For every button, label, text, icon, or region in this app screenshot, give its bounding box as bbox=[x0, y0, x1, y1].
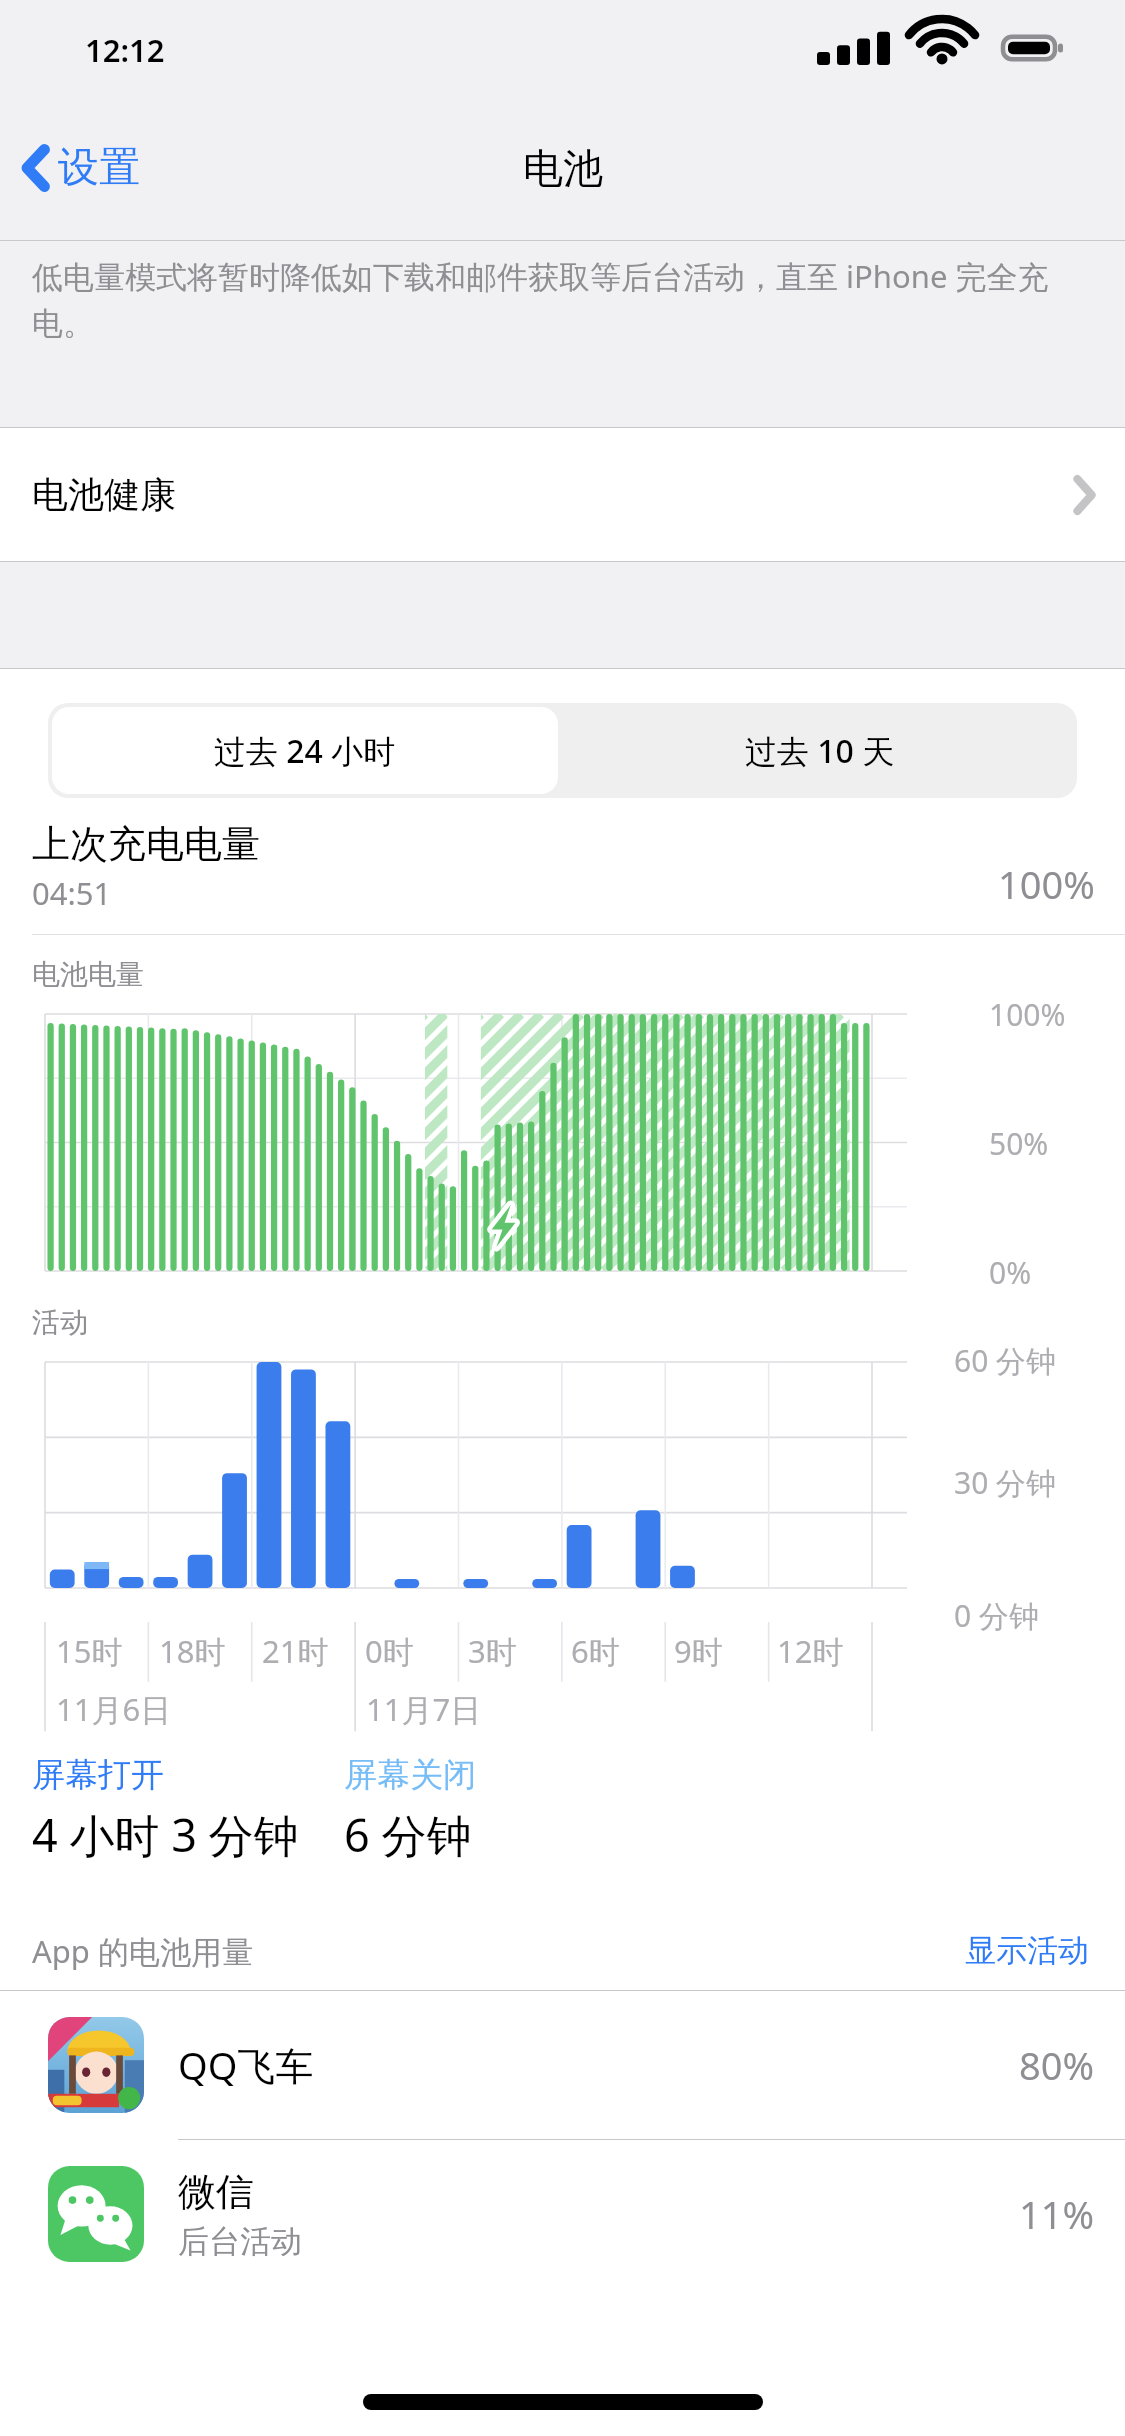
staticText: 电池电量 bbox=[32, 957, 144, 992]
staticText: 0 分钟 bbox=[954, 1595, 1039, 1636]
staticText: 上次充电电量 bbox=[32, 820, 260, 868]
button[interactable]: 过去 24 小时 bbox=[52, 707, 558, 794]
staticText: 11月6日 bbox=[56, 1688, 172, 1730]
staticText: 微信 bbox=[178, 2168, 254, 2216]
staticText: 15时 bbox=[56, 1630, 123, 1672]
staticText: 4 小时 3 分钟 bbox=[32, 1804, 299, 1865]
staticText: 80% bbox=[1019, 2039, 1095, 2091]
staticText: 屏幕打开 bbox=[32, 1754, 164, 1796]
staticText: 11月7日 bbox=[366, 1688, 482, 1730]
staticText: 0时 bbox=[365, 1630, 414, 1672]
staticText: 电池 bbox=[523, 143, 603, 193]
staticText: 过去 24 小时 bbox=[214, 729, 396, 773]
button[interactable]: 过去 10 天 bbox=[562, 703, 1077, 798]
button[interactable]: QQ飞车 bbox=[0, 1991, 1125, 2139]
staticText: 活动 bbox=[32, 1305, 88, 1340]
staticText: 30 分钟 bbox=[954, 1462, 1057, 1503]
staticText: 50% bbox=[989, 1123, 1049, 1164]
staticText: 6 分钟 bbox=[344, 1804, 472, 1865]
staticText: 后台活动 bbox=[178, 2222, 302, 2261]
staticText: 100% bbox=[989, 994, 1066, 1035]
staticText: 设置 bbox=[58, 142, 140, 194]
button[interactable]: 设置 bbox=[0, 130, 158, 206]
button[interactable]: 显示活动 bbox=[959, 1925, 1095, 1976]
staticText: 100% bbox=[998, 858, 1095, 910]
staticText: 低电量模式将暂时降低如下载和邮件获取等后台活动，直至 iPhone 完全充电。 bbox=[32, 255, 1070, 344]
staticText: 60 分钟 bbox=[954, 1340, 1057, 1381]
staticText: 显示活动 bbox=[965, 1931, 1089, 1970]
staticText: 21时 bbox=[262, 1630, 329, 1672]
staticText: 屏幕关闭 bbox=[344, 1754, 476, 1796]
staticText: 04:51 bbox=[32, 872, 112, 914]
staticText: QQ飞车 bbox=[178, 2039, 314, 2091]
staticText: 6时 bbox=[571, 1630, 620, 1672]
button[interactable]: 电池健康 bbox=[0, 428, 1125, 561]
button[interactable]: 微信 bbox=[0, 2140, 1125, 2288]
staticText: App 的电池用量 bbox=[32, 1930, 253, 1972]
staticText: 18时 bbox=[159, 1630, 226, 1672]
staticText: 9时 bbox=[674, 1630, 723, 1672]
staticText: 12时 bbox=[777, 1630, 844, 1672]
staticText: 0% bbox=[989, 1252, 1032, 1293]
staticText: 电池健康 bbox=[32, 472, 176, 517]
staticText: 12:12 bbox=[85, 29, 165, 71]
staticText: 3时 bbox=[468, 1630, 517, 1672]
staticText: 过去 10 天 bbox=[745, 729, 895, 773]
staticText: 11% bbox=[1019, 2188, 1095, 2240]
other: Signal, Wi-Fi and battery status bbox=[807, 31, 1067, 65]
